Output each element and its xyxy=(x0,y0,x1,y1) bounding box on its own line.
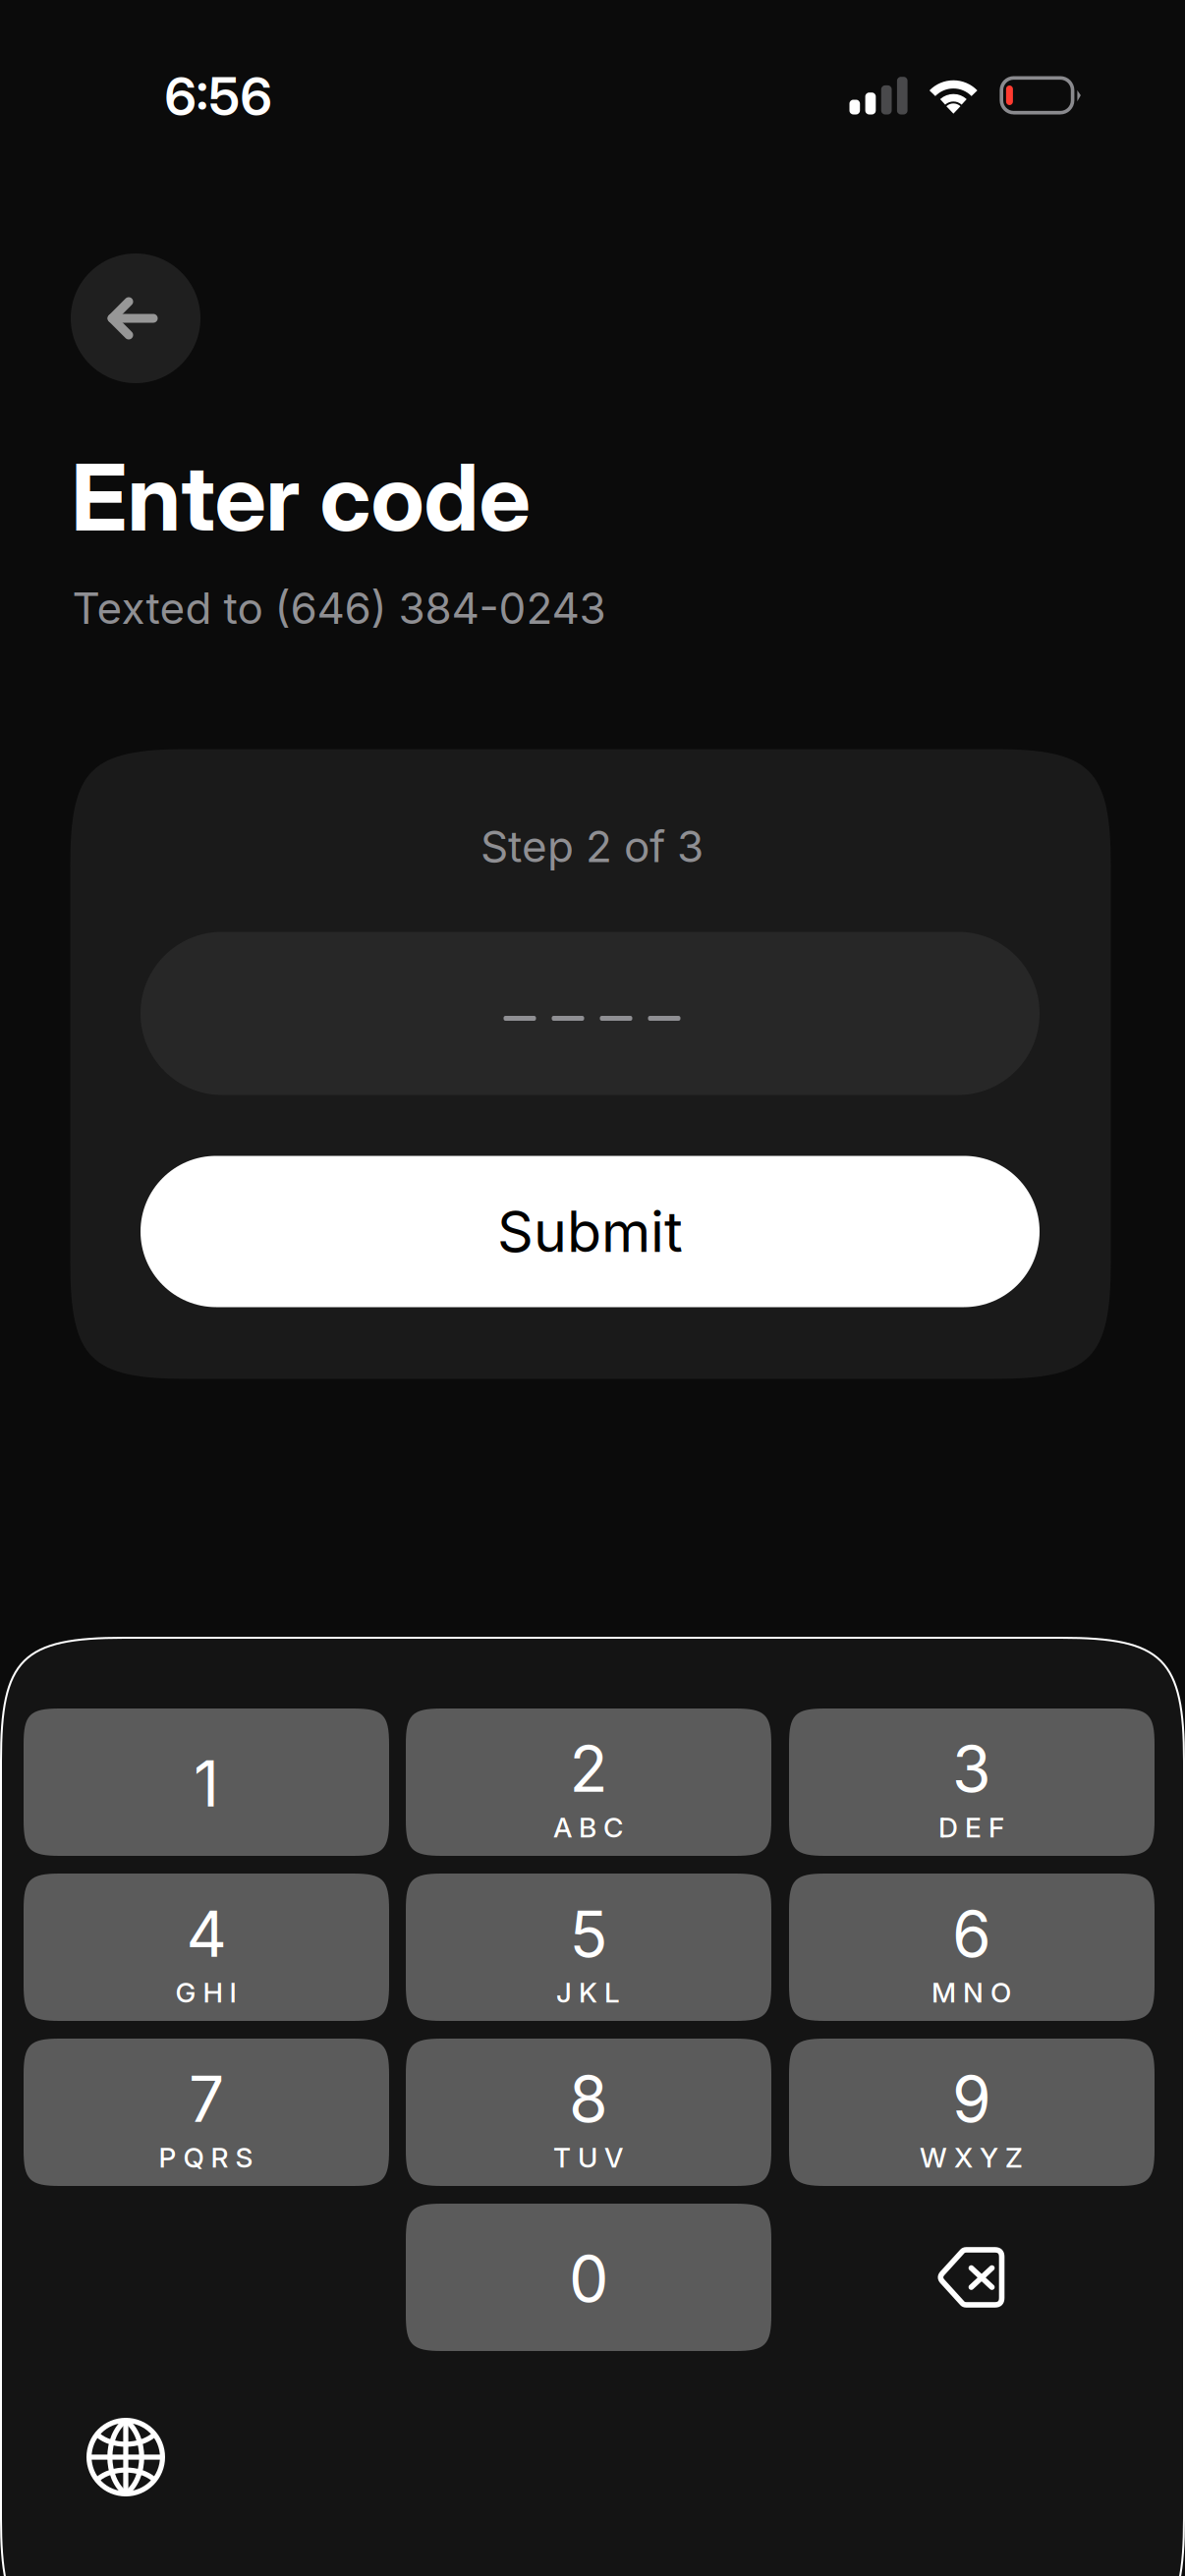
staticText: WXYZ xyxy=(920,2141,1023,2174)
button[interactable]: 6 xyxy=(789,1874,1155,2021)
staticText: JKL xyxy=(556,1976,620,2009)
staticText: 6 xyxy=(952,1896,991,1972)
button[interactable]: 2 xyxy=(406,1708,771,1856)
staticText: 2 xyxy=(569,1731,608,1807)
staticText: TUV xyxy=(553,2141,623,2174)
button[interactable]: Next keyboard xyxy=(57,2393,195,2521)
staticText: Texted to (646) 384-0243 xyxy=(72,582,606,634)
staticText: 6:56 xyxy=(165,65,272,128)
button[interactable]: 0 xyxy=(406,2204,771,2351)
button[interactable]: Back xyxy=(71,253,200,383)
button[interactable]: Submit xyxy=(141,1156,1040,1307)
staticText: 4 xyxy=(186,1896,226,1972)
staticText: 7 xyxy=(189,2061,224,2137)
button[interactable]: 3 xyxy=(789,1708,1155,1856)
button[interactable]: 4 xyxy=(24,1874,389,2021)
button[interactable]: 7 xyxy=(24,2039,389,2186)
staticText: 1 xyxy=(194,1746,219,1822)
button[interactable]: 1 xyxy=(24,1708,389,1856)
button[interactable]: 5 xyxy=(406,1874,771,2021)
staticText: 5 xyxy=(569,1896,608,1972)
staticText: Enter code xyxy=(71,442,530,553)
staticText: ABC xyxy=(553,1811,623,1844)
staticText: PQRS xyxy=(159,2141,253,2174)
button[interactable]: 9 xyxy=(789,2039,1155,2186)
staticText: Submit xyxy=(497,1197,683,1266)
staticText: Step 2 of 3 xyxy=(480,820,704,873)
staticText: GHI xyxy=(175,1976,236,2009)
staticText: 0 xyxy=(569,2241,608,2317)
staticText: 9 xyxy=(952,2061,991,2137)
staticText: DEF xyxy=(938,1811,1004,1844)
button[interactable]: Delete xyxy=(789,2204,1155,2351)
staticText: 8 xyxy=(569,2061,608,2137)
button[interactable]: 8 xyxy=(406,2039,771,2186)
staticText: 3 xyxy=(952,1731,991,1807)
staticText: MNO xyxy=(931,1976,1011,2009)
